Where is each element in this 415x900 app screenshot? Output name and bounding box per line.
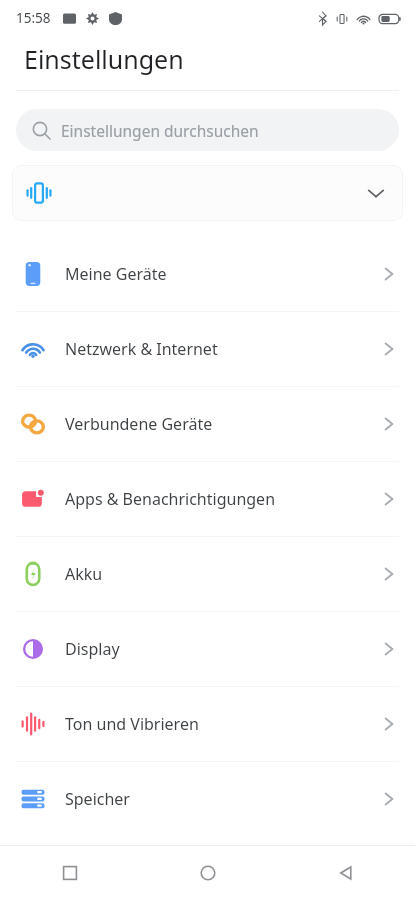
button[interactable]: Zuletzt verwendet xyxy=(0,846,139,900)
button[interactable]: Einstellungen durchsuchen xyxy=(16,109,399,151)
button[interactable]: Ton und Vibrieren xyxy=(0,687,415,761)
staticText: Einstellungen xyxy=(24,42,184,76)
staticText: Ton und Vibrieren xyxy=(65,713,199,735)
button[interactable]: Startbildschirm xyxy=(139,846,277,900)
staticText: Einstellungen durchsuchen xyxy=(61,120,259,141)
staticText: Netzwerk & Internet xyxy=(65,338,218,360)
staticText: Verbundene Geräte xyxy=(65,413,213,435)
button[interactable]: Verbundene Geräte xyxy=(0,387,415,461)
staticText: Apps & Benachrichtigungen xyxy=(65,488,276,510)
staticText: 15:58 xyxy=(16,9,51,27)
button[interactable]: Erweitern xyxy=(12,165,403,221)
button[interactable]: Display xyxy=(0,612,415,686)
button[interactable]: Erweitern xyxy=(363,180,389,206)
staticText: Display xyxy=(65,638,120,660)
button[interactable]: Akku xyxy=(0,537,415,611)
button[interactable]: Zurück xyxy=(277,846,415,900)
staticText: Akku xyxy=(65,563,103,585)
staticText: Meine Geräte xyxy=(65,263,167,285)
staticText: Speicher xyxy=(65,788,130,810)
button[interactable]: Speicher xyxy=(0,762,415,836)
button[interactable]: Apps & Benachrichtigungen xyxy=(0,462,415,536)
button[interactable]: Meine Geräte xyxy=(0,237,415,311)
button[interactable]: Netzwerk & Internet xyxy=(0,312,415,386)
